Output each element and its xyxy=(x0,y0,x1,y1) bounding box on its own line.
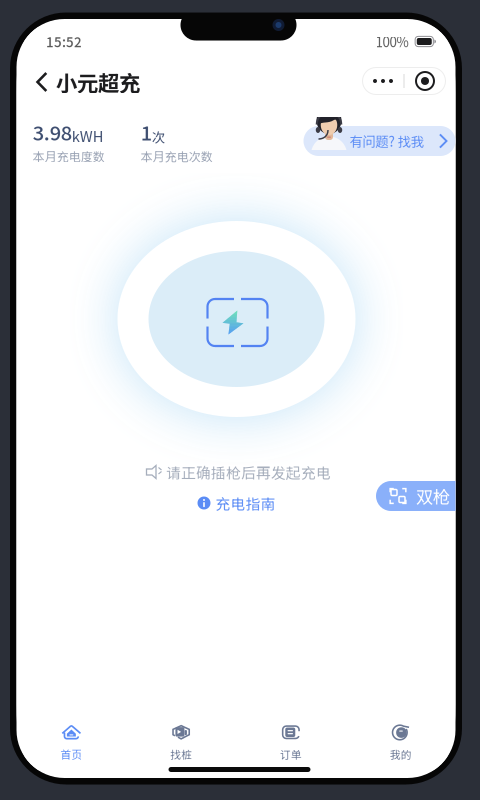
staticText: 100% xyxy=(375,32,408,51)
staticText: 双枪 xyxy=(416,483,450,509)
button[interactable]: 找桩 xyxy=(126,719,236,765)
button[interactable]: Close mini program xyxy=(404,67,445,94)
button[interactable]: 小元超充 xyxy=(36,61,176,103)
button[interactable]: 有问题? 找我 xyxy=(303,116,455,156)
staticText: 订单 xyxy=(280,746,302,762)
button[interactable]: 订单 xyxy=(236,719,346,765)
staticText: 15:52 xyxy=(46,32,82,51)
button[interactable]: 充电指南 xyxy=(189,488,283,518)
staticText: 请正确插枪后再发起充电 xyxy=(166,461,331,483)
button[interactable]: 首页 xyxy=(16,719,126,765)
staticText: 首页 xyxy=(60,746,82,762)
button[interactable]: 我的 xyxy=(346,719,456,765)
staticText: 3.98 xyxy=(33,117,72,146)
staticText: 有问题? 找我 xyxy=(349,131,423,151)
button[interactable]: More options xyxy=(362,67,403,94)
button[interactable]: 双枪 xyxy=(376,481,480,511)
staticText: 我的 xyxy=(390,746,412,762)
staticText: kWH xyxy=(72,125,104,146)
staticText: 小元超充 xyxy=(56,67,140,97)
staticText: 次 xyxy=(152,127,165,146)
staticText: 1 xyxy=(141,117,152,146)
staticText: 本月充电度数 xyxy=(33,147,105,165)
staticText: 本月充电次数 xyxy=(141,147,213,165)
staticText: 找桩 xyxy=(170,746,192,762)
button[interactable]: Start charging xyxy=(86,194,386,444)
staticText: 充电指南 xyxy=(215,492,275,514)
